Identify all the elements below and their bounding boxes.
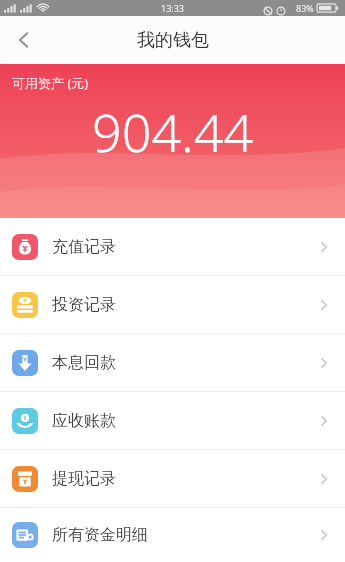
button[interactable]: 投资记录	[0, 276, 345, 333]
button[interactable]: Back	[0, 16, 48, 64]
staticText: 所有资金明细	[52, 525, 148, 545]
staticText: 可用资产 (元)	[12, 74, 89, 92]
button[interactable]: 本息回款	[0, 334, 345, 391]
staticText: 我的钱包	[137, 29, 209, 52]
staticText: 13:33	[161, 2, 185, 14]
staticText: 83%	[296, 2, 314, 14]
staticText: 904.44	[92, 96, 254, 167]
button[interactable]: 提现记录	[0, 450, 345, 507]
staticText: 投资记录	[52, 295, 116, 315]
button[interactable]: 应收账款	[0, 392, 345, 449]
button[interactable]: 所有资金明细	[0, 508, 345, 562]
button[interactable]: 充值记录	[0, 218, 345, 275]
staticText: 应收账款	[52, 411, 116, 431]
staticText: 充值记录	[52, 237, 116, 257]
staticText: 提现记录	[52, 469, 116, 489]
staticText: 本息回款	[52, 353, 116, 373]
